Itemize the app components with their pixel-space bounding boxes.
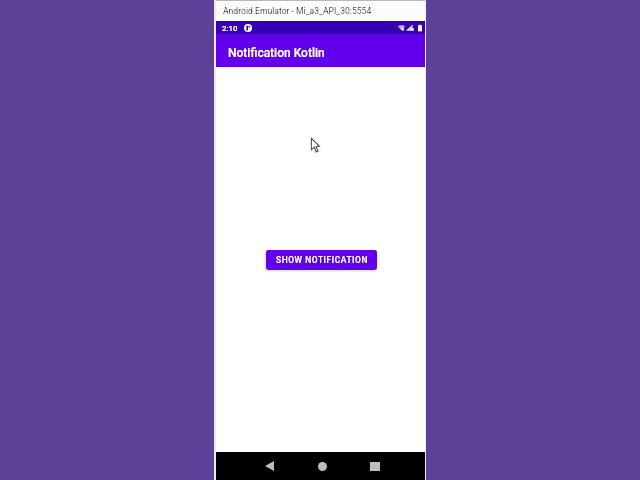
button[interactable]: Home (310, 454, 334, 478)
button[interactable]: Recents (363, 454, 387, 478)
staticText: 2:10 (222, 24, 238, 33)
button[interactable]: Back (257, 454, 281, 478)
staticText: Notification Kotlin (228, 46, 325, 60)
staticText: SHOW NOTIFICATION (276, 255, 368, 265)
staticText: Android Emulator - Mi_a3_API_30:5554 (223, 6, 372, 16)
button[interactable]: SHOW NOTIFICATION (266, 250, 377, 270)
